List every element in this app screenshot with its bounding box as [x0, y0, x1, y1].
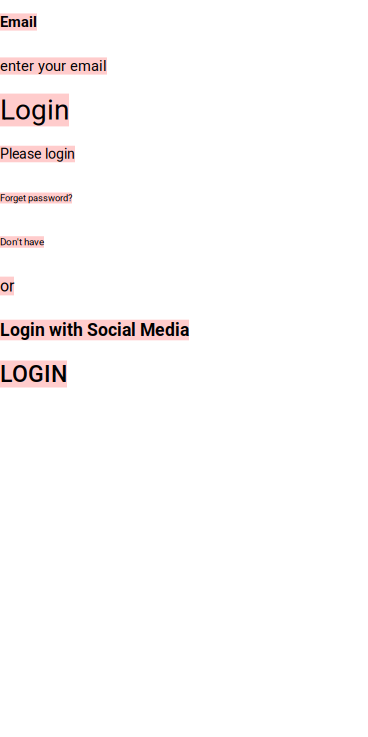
staticText: enter your email — [0, 57, 107, 75]
staticText: Forget password? — [0, 192, 72, 203]
staticText: LOGIN — [0, 360, 67, 387]
staticText: Don't have — [0, 236, 44, 248]
staticText: Email — [0, 13, 37, 31]
staticText: Please login — [0, 146, 75, 162]
staticText: Login — [0, 94, 69, 126]
staticText: or — [0, 277, 14, 295]
staticText: Login with Social Media — [0, 320, 189, 340]
